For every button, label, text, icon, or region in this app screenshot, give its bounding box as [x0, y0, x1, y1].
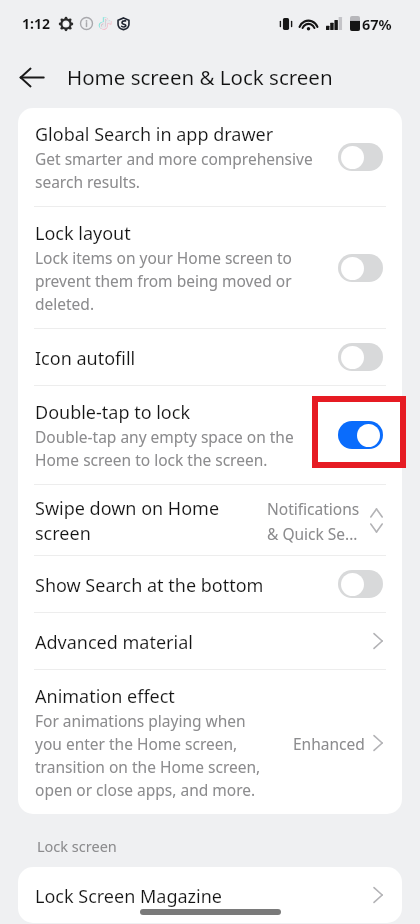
button[interactable]: Lock Screen Magazine — [18, 867, 402, 923]
staticText: Show Search at the bottom — [35, 572, 264, 597]
staticText: Lock screen — [37, 836, 117, 856]
button[interactable]: Global Search in app drawer — [18, 108, 402, 206]
staticText: Get smarter and more comprehensive searc… — [35, 147, 324, 193]
button[interactable]: Back — [9, 54, 55, 100]
button[interactable]: Advanced material — [18, 613, 402, 669]
staticText: Home screen & Lock screen — [67, 63, 333, 91]
button[interactable]: Off — [338, 254, 383, 282]
staticText: Enhanced — [293, 730, 365, 755]
staticText: 67% — [362, 14, 392, 34]
staticText: For animations playing when you enter th… — [35, 709, 263, 801]
staticText: Notifications & Quick Se... — [267, 495, 364, 545]
staticText: Lock layout — [35, 220, 131, 245]
staticText: Icon autofill — [35, 345, 136, 370]
button[interactable]: Icon autofill — [18, 329, 402, 385]
staticText: Double-tap to lock — [35, 399, 191, 424]
button[interactable]: Lock layout — [18, 207, 402, 328]
staticText: Lock items on your Home screen to preven… — [35, 246, 324, 315]
button[interactable]: Animation effect — [18, 670, 402, 814]
staticText: Animation effect — [35, 683, 175, 708]
button[interactable]: Off — [338, 570, 383, 598]
staticText: Double-tap any empty space on the Home s… — [35, 425, 324, 471]
button[interactable]: On — [338, 421, 383, 449]
button[interactable]: Off — [338, 143, 383, 171]
staticText: 1:12 — [22, 14, 50, 33]
staticText: Lock Screen Magazine — [35, 883, 222, 908]
button[interactable]: Swipe down on Home screen — [18, 485, 402, 555]
button[interactable]: Double-tap to lock — [18, 386, 402, 484]
button[interactable]: Off — [338, 343, 383, 371]
staticText: Advanced material — [35, 629, 193, 654]
staticText: Global Search in app drawer — [35, 121, 274, 146]
button[interactable]: Show Search at the bottom — [18, 556, 402, 612]
staticText: Swipe down on Home screen — [35, 495, 235, 545]
